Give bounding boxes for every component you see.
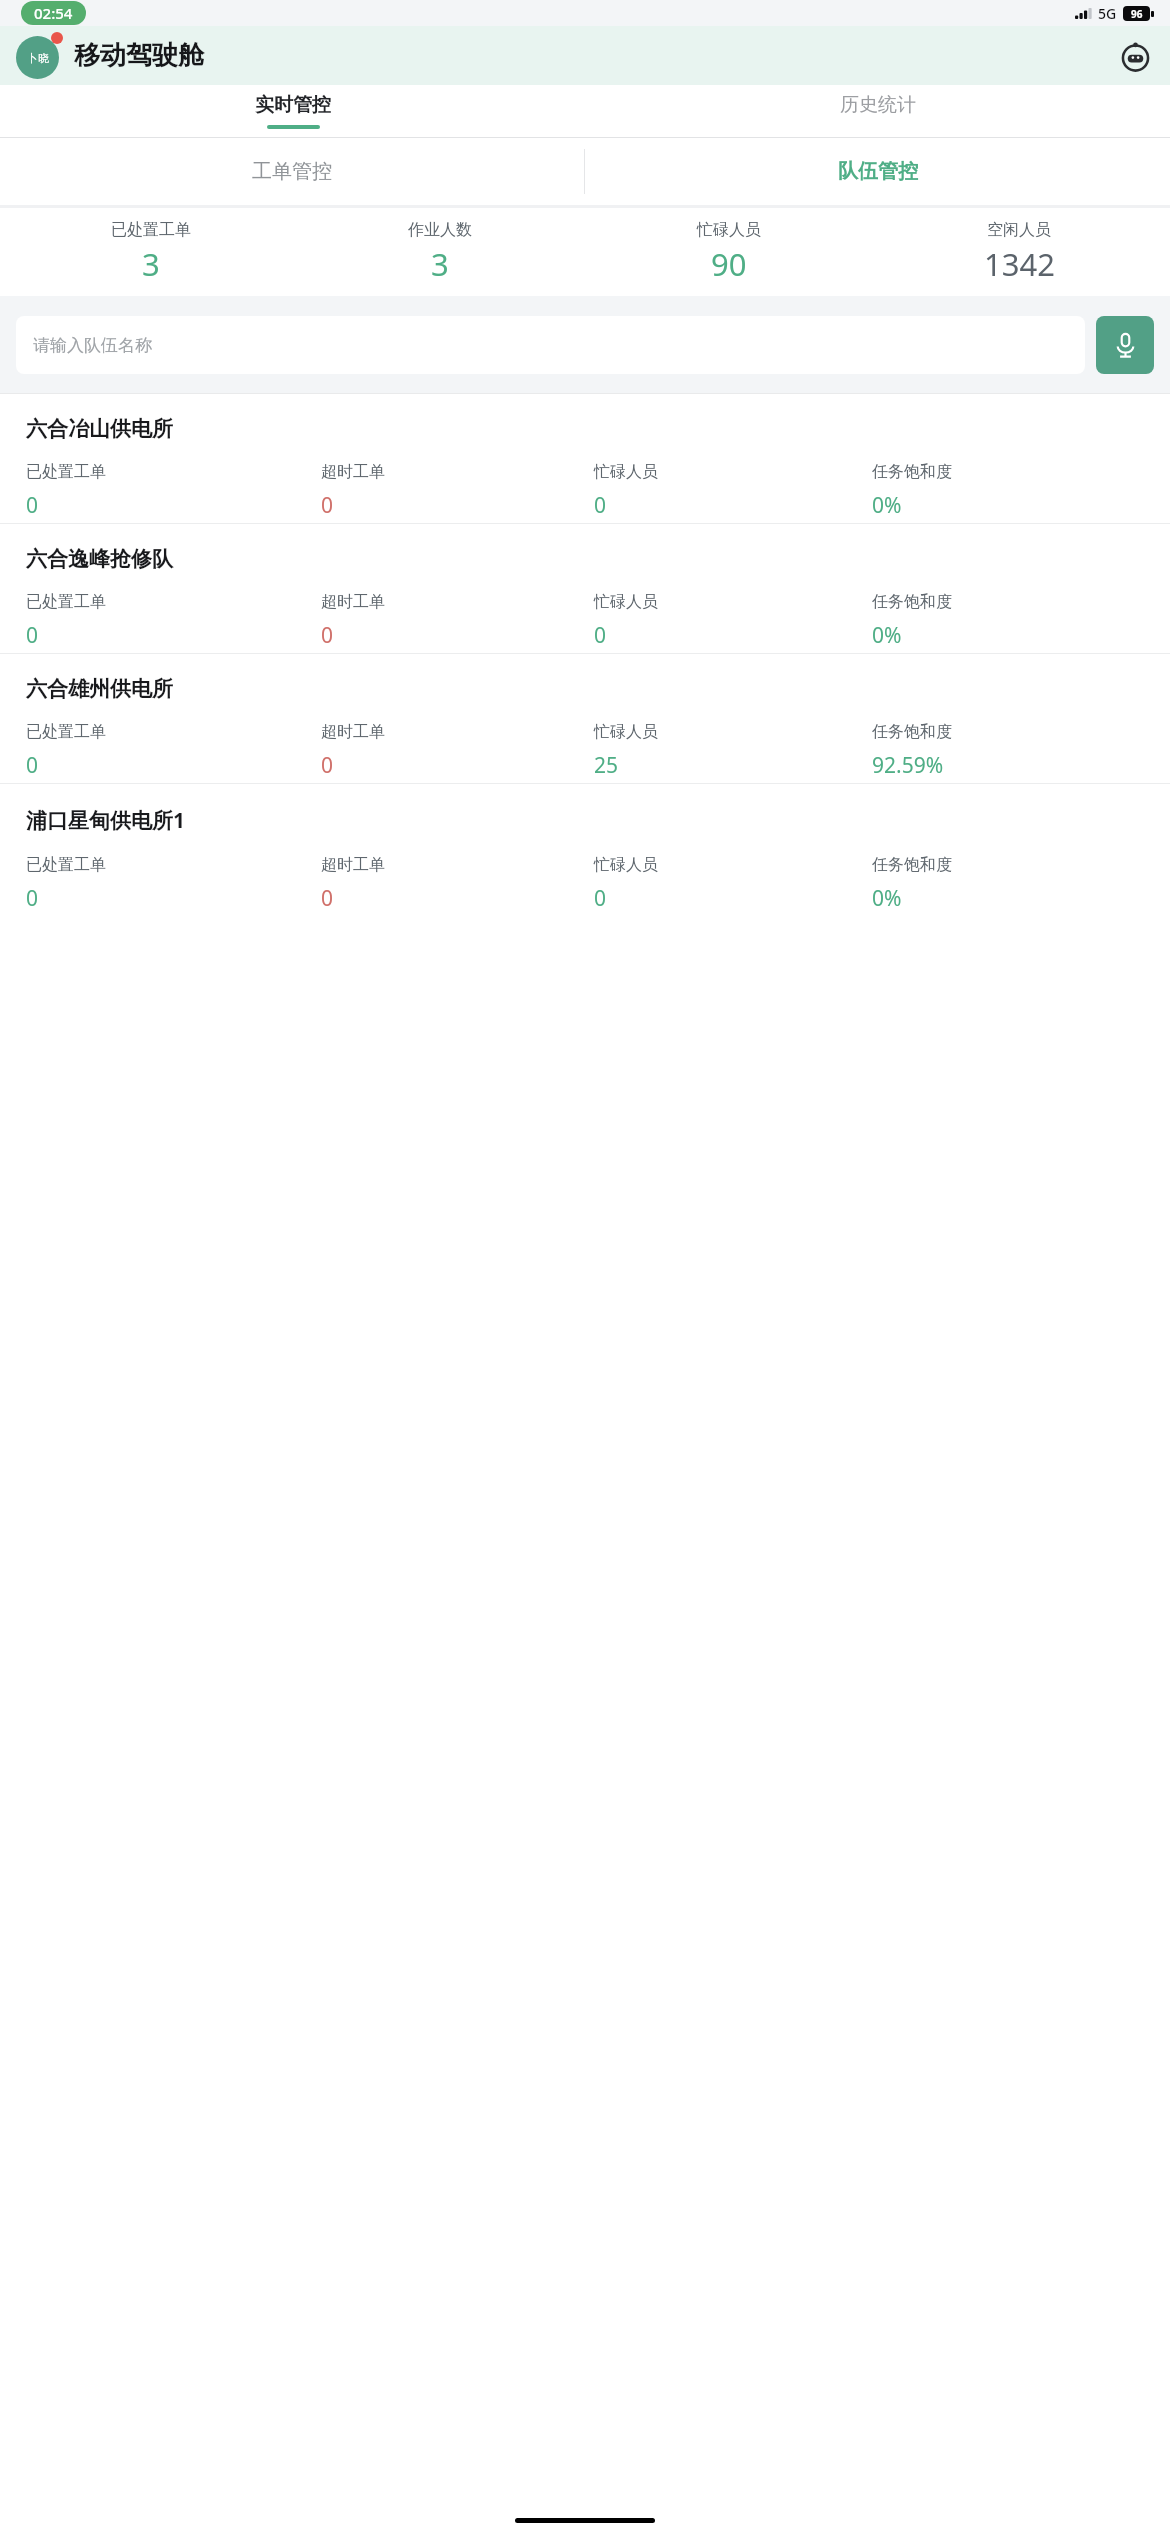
staticText: 任务饱和度 — [872, 462, 952, 482]
staticText: 浦口星甸供电所1 — [26, 806, 186, 835]
staticText: 1342 — [984, 243, 1055, 285]
staticText: 空闲人员 — [987, 220, 1051, 240]
staticText: 忙碌人员 — [594, 462, 658, 482]
staticText: 3 — [431, 243, 449, 285]
staticText: 忙碌人员 — [594, 592, 658, 612]
button[interactable]: 历史统计 — [585, 85, 1170, 137]
button[interactable]: 工单管控 — [0, 138, 584, 205]
button[interactable]: 作业人数 — [295, 208, 584, 296]
staticText: 任务饱和度 — [872, 592, 952, 612]
button[interactable]: 六合雄州供电所 — [0, 654, 1170, 783]
button[interactable]: 队伍管控 — [585, 138, 1170, 205]
button[interactable]: 请输入队伍名称 — [16, 316, 1085, 374]
staticText: 已处置工单 — [26, 722, 106, 742]
staticText: 0 — [26, 491, 39, 520]
button[interactable]: 忙碌人员 — [584, 208, 874, 296]
staticText: 超时工单 — [321, 592, 385, 612]
staticText: 六合冶山供电所 — [26, 416, 173, 442]
staticText: 任务饱和度 — [872, 855, 952, 875]
button[interactable]: 实时管控 — [0, 85, 585, 137]
staticText: 5G — [1098, 4, 1117, 23]
button[interactable]: 六合冶山供电所 — [0, 394, 1170, 523]
button[interactable]: Voice input — [1096, 316, 1154, 374]
staticText: 0 — [594, 621, 607, 650]
staticText: 忙碌人员 — [697, 220, 761, 240]
staticText: 忙碌人员 — [594, 855, 658, 875]
staticText: 已处置工单 — [26, 855, 106, 875]
staticText: 工单管控 — [252, 159, 332, 184]
staticText: 超时工单 — [321, 462, 385, 482]
staticText: 移动驾驶舱 — [74, 39, 204, 72]
staticText: 0 — [26, 621, 39, 650]
button[interactable]: 六合逸峰抢修队 — [0, 524, 1170, 653]
button[interactable]: 空闲人员 — [874, 208, 1164, 296]
button[interactable]: 已处置工单 — [6, 208, 295, 296]
staticText: 0% — [872, 491, 902, 520]
staticText: 已处置工单 — [111, 220, 191, 240]
staticText: 0 — [321, 884, 334, 913]
staticText: 02:54 — [34, 3, 73, 23]
staticText: 任务饱和度 — [872, 722, 952, 742]
staticText: 请输入队伍名称 — [33, 335, 152, 356]
staticText: 0 — [321, 751, 334, 780]
staticText: 忙碌人员 — [594, 722, 658, 742]
staticText: 六合雄州供电所 — [26, 676, 173, 702]
staticText: 0% — [872, 621, 902, 650]
staticText: 0 — [594, 884, 607, 913]
staticText: 0 — [26, 751, 39, 780]
staticText: 25 — [594, 751, 619, 780]
staticText: 超时工单 — [321, 722, 385, 742]
staticText: 0% — [872, 884, 902, 913]
staticText: 超时工单 — [321, 855, 385, 875]
staticText: 实时管控 — [255, 93, 331, 117]
staticText: 96 — [1131, 7, 1143, 21]
button[interactable]: 浦口星甸供电所1 — [0, 784, 1170, 913]
staticText: 3 — [142, 243, 160, 285]
staticText: 历史统计 — [840, 93, 916, 117]
staticText: 0 — [594, 491, 607, 520]
button[interactable]: AI assistant — [1114, 35, 1156, 77]
staticText: 92.59% — [872, 751, 944, 780]
staticText: 队伍管控 — [838, 159, 918, 184]
staticText: 0 — [321, 491, 334, 520]
staticText: 90 — [711, 243, 747, 285]
staticText: 0 — [321, 621, 334, 650]
staticText: 卜晓 — [27, 51, 49, 65]
staticText: 已处置工单 — [26, 592, 106, 612]
staticText: 作业人数 — [408, 220, 472, 240]
staticText: 六合逸峰抢修队 — [26, 546, 173, 572]
staticText: 已处置工单 — [26, 462, 106, 482]
staticText: 0 — [26, 884, 39, 913]
button[interactable]: User profile — [16, 36, 59, 79]
